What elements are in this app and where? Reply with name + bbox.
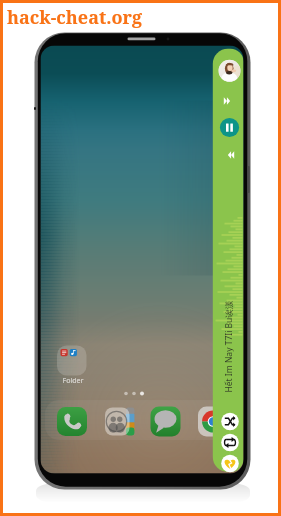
staticText: hack-cheat.org [7, 5, 143, 30]
button[interactable]: Pause [219, 117, 241, 139]
button[interactable]: Shuffle [221, 412, 240, 431]
staticText: Hết Im Nay T7Ii Bu诶漾 [222, 300, 233, 392]
staticText: Folder [58, 376, 88, 386]
button[interactable]: Chrome [198, 406, 213, 436]
button[interactable]: Messages [150, 406, 180, 436]
button[interactable]: Phone [57, 407, 87, 436]
button[interactable]: Contacts [105, 407, 135, 436]
button[interactable]: Next track [218, 94, 240, 110]
button[interactable]: Previous track [218, 148, 240, 164]
button[interactable]: Unlike [221, 454, 240, 473]
button[interactable]: Profile [214, 52, 244, 88]
button[interactable]: Folder [57, 345, 87, 383]
button[interactable]: Repeat [221, 433, 240, 452]
